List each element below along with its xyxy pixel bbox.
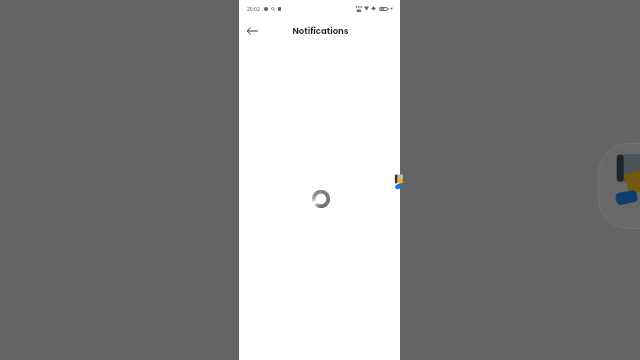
button[interactable]: Back bbox=[242, 21, 262, 41]
staticText: 20:02 bbox=[247, 6, 260, 13]
staticText: Notifications bbox=[292, 25, 349, 37]
